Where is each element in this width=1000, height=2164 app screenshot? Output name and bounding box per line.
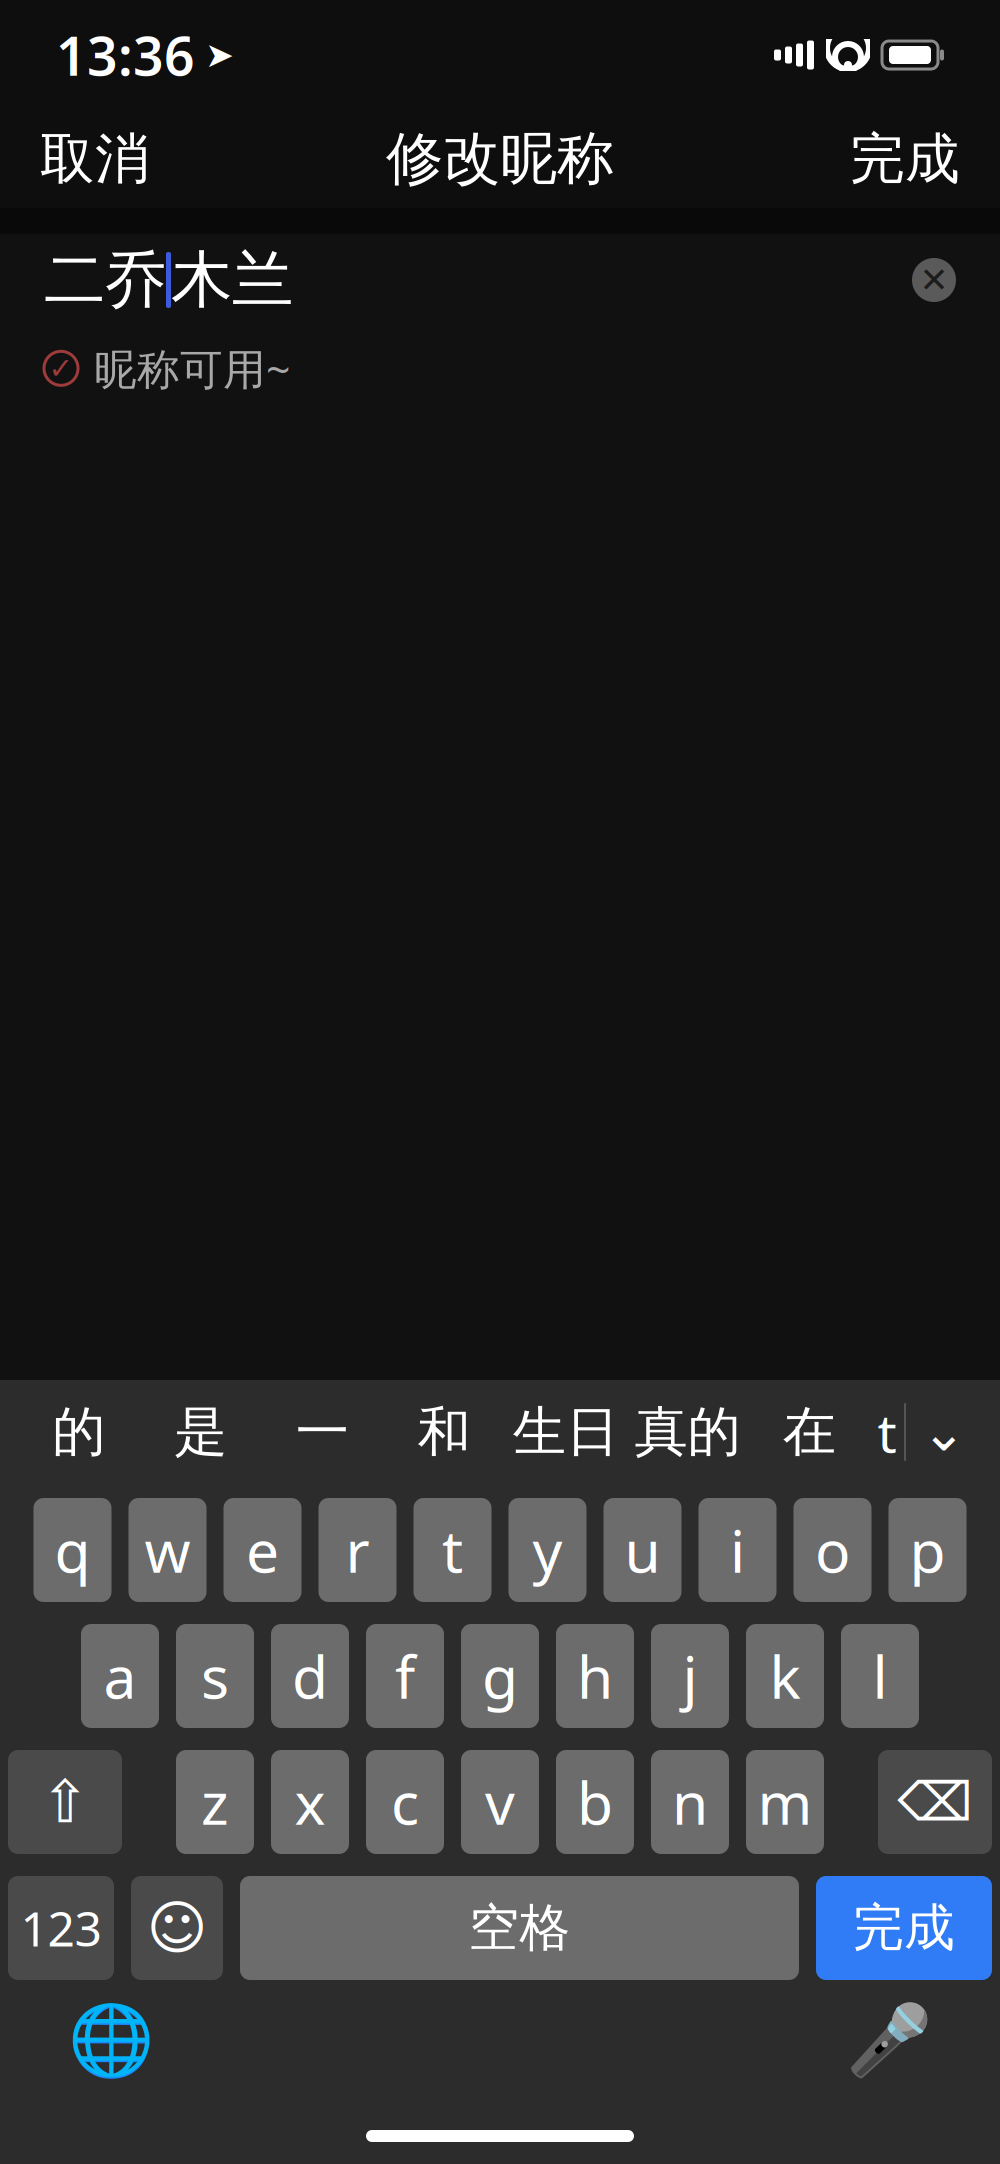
staticText: ➤ xyxy=(205,35,234,75)
staticText: d xyxy=(292,1637,328,1715)
button[interactable]: y xyxy=(508,1498,586,1602)
staticText: 🌐 xyxy=(68,2000,154,2080)
staticText: 取消 xyxy=(40,125,150,192)
staticText: k xyxy=(769,1637,800,1715)
staticText: 在 xyxy=(783,1399,836,1465)
staticText: ✕ xyxy=(919,260,948,300)
button[interactable]: g xyxy=(461,1624,539,1728)
staticText: y xyxy=(532,1511,562,1589)
staticText: l xyxy=(872,1637,887,1715)
button[interactable]: 展开候选 xyxy=(906,1392,982,1472)
staticText: ☺ xyxy=(146,1895,207,1961)
button[interactable]: m xyxy=(746,1750,824,1854)
button[interactable]: 取消 xyxy=(12,107,178,210)
staticText: c xyxy=(391,1763,419,1841)
staticText: g xyxy=(482,1637,518,1715)
button[interactable]: t xyxy=(413,1498,491,1602)
staticText: h xyxy=(577,1637,613,1715)
button[interactable]: 语音输入 xyxy=(830,1984,948,2096)
button[interactable]: 是 xyxy=(140,1383,261,1481)
staticText: u xyxy=(624,1511,660,1589)
button[interactable]: a xyxy=(81,1624,159,1728)
button[interactable]: r xyxy=(318,1498,396,1602)
staticText: v xyxy=(485,1763,515,1841)
button[interactable]: 清除 xyxy=(912,258,956,302)
button[interactable]: 表情 xyxy=(131,1876,223,1980)
button[interactable]: 和 xyxy=(383,1383,505,1481)
button[interactable]: 生日 xyxy=(505,1383,627,1481)
staticText: n xyxy=(672,1763,708,1841)
button[interactable]: h xyxy=(556,1624,634,1728)
staticText: t xyxy=(442,1511,463,1589)
button[interactable]: o xyxy=(793,1498,871,1602)
staticText: 13:36 xyxy=(56,20,195,90)
button[interactable]: 删除 xyxy=(878,1750,992,1854)
staticText: 是 xyxy=(174,1399,227,1465)
staticText: 生日 xyxy=(513,1399,619,1465)
staticText: 的 xyxy=(52,1399,105,1465)
button[interactable]: 在 xyxy=(748,1383,870,1481)
staticText: 一 xyxy=(296,1399,349,1465)
button[interactable]: x xyxy=(271,1750,349,1854)
staticText: p xyxy=(909,1511,945,1589)
button[interactable]: n xyxy=(651,1750,729,1854)
staticText: 和 xyxy=(417,1399,470,1465)
button[interactable]: p xyxy=(888,1498,966,1602)
staticText: b xyxy=(577,1763,613,1841)
button[interactable]: q xyxy=(33,1498,111,1602)
staticText: q xyxy=(54,1511,90,1589)
button[interactable]: 一 xyxy=(261,1383,383,1481)
staticText: 真的 xyxy=(634,1399,740,1465)
staticText: f xyxy=(395,1637,415,1715)
staticText: t xyxy=(877,1397,896,1467)
staticText: e xyxy=(246,1511,279,1589)
button[interactable]: u xyxy=(603,1498,681,1602)
button[interactable]: 完成 xyxy=(816,1876,992,1980)
button[interactable]: w xyxy=(128,1498,206,1602)
staticText: 木兰 xyxy=(171,242,293,318)
staticText: 🎤 xyxy=(846,2000,932,2080)
button[interactable]: d xyxy=(271,1624,349,1728)
button[interactable]: j xyxy=(651,1624,729,1728)
button[interactable]: e xyxy=(223,1498,301,1602)
staticText: 完成 xyxy=(850,125,960,192)
button[interactable]: 真的 xyxy=(627,1383,748,1481)
button[interactable]: 完成 xyxy=(822,107,988,210)
button[interactable]: i xyxy=(698,1498,776,1602)
button[interactable]: c xyxy=(366,1750,444,1854)
staticText: 完成 xyxy=(853,1897,955,1959)
staticText: s xyxy=(201,1637,229,1715)
staticText: ⇧ xyxy=(40,1769,89,1835)
staticText: 昵称可用~ xyxy=(94,340,290,397)
staticText: a xyxy=(103,1637,136,1715)
button[interactable]: b xyxy=(556,1750,634,1854)
button[interactable]: 的 xyxy=(18,1383,140,1481)
staticText: 修改昵称 xyxy=(386,124,614,194)
staticText: z xyxy=(201,1763,229,1841)
staticText: o xyxy=(815,1511,850,1589)
button[interactable]: z xyxy=(176,1750,254,1854)
button[interactable]: Shift xyxy=(8,1750,122,1854)
staticText: r xyxy=(345,1511,369,1589)
button[interactable]: 空格 xyxy=(240,1876,799,1980)
staticText: ⌄ xyxy=(921,1402,966,1462)
staticText: m xyxy=(757,1763,812,1841)
button[interactable]: 123 xyxy=(8,1876,114,1980)
button[interactable]: l xyxy=(841,1624,919,1728)
button[interactable]: t xyxy=(870,1381,904,1483)
button[interactable]: k xyxy=(746,1624,824,1728)
staticText: j xyxy=(682,1637,697,1715)
staticText: i xyxy=(730,1511,745,1589)
button[interactable]: v xyxy=(461,1750,539,1854)
button[interactable]: s xyxy=(176,1624,254,1728)
button[interactable]: 切换键盘 xyxy=(52,1984,170,2096)
staticText: w xyxy=(144,1511,190,1589)
staticText: 123 xyxy=(20,1896,101,1960)
staticText: 二乔 xyxy=(44,242,166,318)
button[interactable]: f xyxy=(366,1624,444,1728)
staticText: ✓ xyxy=(48,352,73,385)
staticText: x xyxy=(294,1763,325,1841)
staticText: 空格 xyxy=(468,1897,570,1959)
staticText: ⌫ xyxy=(897,1772,972,1832)
